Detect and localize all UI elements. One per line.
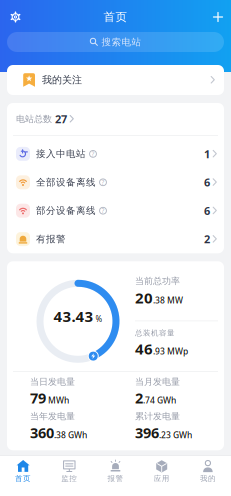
button[interactable]: 有报警 xyxy=(7,225,224,253)
staticText: 1 xyxy=(204,146,210,161)
staticText: 接入中电站 xyxy=(36,148,86,160)
staticText: 应用 xyxy=(154,474,170,483)
staticText: 2.74 GWh xyxy=(135,388,176,408)
staticText: 当前总功率 xyxy=(135,275,180,287)
staticText: 监控 xyxy=(61,474,77,483)
staticText: 我的 xyxy=(200,474,216,483)
staticText: ? xyxy=(101,206,104,215)
staticText: 累计发电量 xyxy=(135,411,180,422)
button[interactable]: 监控 xyxy=(46,460,92,483)
staticText: 6 xyxy=(204,203,210,218)
staticText: 有报警 xyxy=(36,233,66,245)
staticText: 46.93 MWp xyxy=(135,339,188,359)
staticText: 我的关注 xyxy=(42,74,82,86)
staticText: ? xyxy=(91,149,94,158)
staticText: 27 xyxy=(55,111,67,126)
button[interactable]: 我的 xyxy=(185,460,231,483)
staticText: 首页 xyxy=(15,474,31,483)
staticText: 总装机容量 xyxy=(135,328,175,338)
button[interactable]: 设置 xyxy=(0,11,21,22)
staticText: 396.23 GWh xyxy=(135,423,192,442)
button[interactable]: 接入中电站 xyxy=(7,140,224,168)
staticText: 首页 xyxy=(103,10,127,24)
staticText: 当日发电量 xyxy=(30,376,75,387)
staticText: 部分设备离线 xyxy=(36,205,96,217)
staticText: 全部设备离线 xyxy=(36,176,96,188)
button[interactable]: 搜索电站 xyxy=(0,32,231,52)
staticText: 电站总数 xyxy=(16,113,52,125)
staticText: 当月发电量 xyxy=(135,376,180,387)
staticText: 43.43 % xyxy=(53,306,102,326)
button[interactable]: 电站总数 xyxy=(7,103,224,135)
button[interactable]: 我的关注 xyxy=(0,65,231,95)
button[interactable]: 添加电站 xyxy=(213,12,231,22)
staticText: 2 xyxy=(204,232,210,247)
button[interactable]: 首页 xyxy=(0,460,46,483)
button[interactable]: 全部设备离线 xyxy=(7,168,224,196)
staticText: 6 xyxy=(204,175,210,190)
staticText: 20.38 MW xyxy=(135,288,183,307)
staticText: 360.38 GWh xyxy=(30,423,87,442)
button[interactable]: 部分设备离线 xyxy=(7,196,224,225)
staticText: 搜索电站 xyxy=(101,36,141,48)
staticText: 报警 xyxy=(107,474,123,483)
button[interactable]: 报警 xyxy=(92,460,139,483)
staticText: 当年发电量 xyxy=(30,411,75,422)
staticText: ? xyxy=(101,178,104,187)
button[interactable]: 应用 xyxy=(139,460,185,483)
staticText: 79 MWh xyxy=(30,388,69,408)
